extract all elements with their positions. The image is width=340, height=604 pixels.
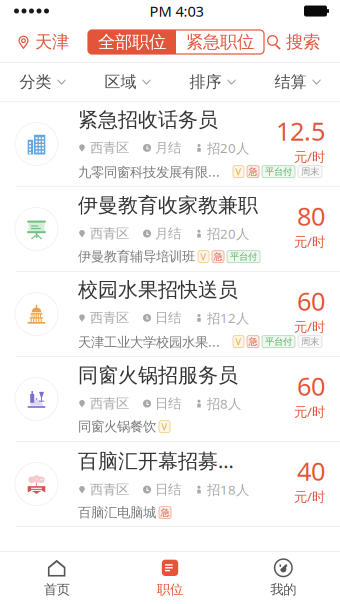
button[interactable]: 结算 [255,63,340,101]
staticText: 校园水果招快送员 [78,277,238,302]
button[interactable]: 排序 [170,63,255,101]
staticText: V [235,165,241,178]
staticText: 急 [248,166,257,177]
button[interactable]: 搜索 [267,22,340,62]
button[interactable]: 60 [0,357,340,442]
staticText: PM 4:03 [149,1,203,21]
button[interactable]: 全部职位 [88,30,176,54]
button[interactable]: 40 [0,442,340,527]
staticText: 元/时 [294,488,325,505]
staticText: 40 [297,454,325,488]
button[interactable]: 80 [0,187,340,272]
staticText: V [235,335,241,348]
staticText: 西青区 [86,395,129,412]
staticText: 周末 [301,336,319,347]
staticText: 招12人 [203,309,249,327]
staticText: 同窗火锅餐饮 [78,418,156,435]
staticText: 日结 [151,395,181,412]
button[interactable]: 区域 [85,63,170,101]
button[interactable]: 12.5 [0,102,340,187]
staticText: 招18人 [203,481,249,498]
button[interactable]: 首页 [0,552,113,604]
button[interactable]: 我的 [227,552,340,604]
button[interactable]: 紧急职位 [176,30,264,54]
staticText: 百脑汇开幕招募… [78,447,234,474]
staticText: 月结 [151,140,181,156]
staticText: 元/时 [294,148,325,165]
button[interactable]: 职位 [113,552,227,604]
staticText: 九零同窗科技发展有限公司 [78,163,230,180]
staticText: 首页 [44,581,70,598]
staticText: 招8人 [203,395,241,412]
staticText: 天津 [35,31,69,53]
staticText: 招20人 [203,225,249,242]
staticText: 元/时 [294,403,325,420]
staticText: 搜索 [286,31,320,53]
staticText: 元/时 [294,233,325,250]
staticText: 日结 [151,481,181,498]
button[interactable]: 分类 [0,63,85,101]
staticText: 周末 [301,166,319,177]
staticText: 伊曼教育辅导培训班 [78,248,195,265]
staticText: 急 [248,336,257,347]
staticText: V [200,250,206,263]
staticText: 紧急招收话务员 [78,107,218,132]
staticText: 百脑汇电脑城 [78,504,156,521]
staticText: V [161,420,167,433]
staticText: 60 [297,284,325,318]
staticText: 我的 [270,581,296,598]
staticText: 职位 [157,581,183,598]
staticText: 平台付 [265,336,292,347]
staticText: 平台付 [230,251,257,262]
staticText: 分类 [19,72,51,92]
staticText: 天津工业大学校园水果大超… [78,333,230,350]
staticText: 平台付 [265,166,292,177]
staticText: 全部职位 [98,31,166,53]
staticText: 伊曼教育收家教兼职 [78,193,258,218]
staticText: 紧急职位 [186,31,254,53]
staticText: 12.5 [276,114,325,148]
staticText: 区域 [104,72,136,92]
button[interactable]: 60 [0,272,340,357]
staticText: 西青区 [86,310,129,326]
staticText: 排序 [189,72,221,92]
staticText: 招20人 [203,139,249,157]
staticText: 元/时 [294,318,325,335]
staticText: 西青区 [86,481,129,498]
staticText: 急 [160,507,169,518]
staticText: 月结 [151,225,181,242]
staticText: 西青区 [86,225,129,242]
staticText: 60 [297,369,325,403]
staticText: 结算 [274,72,306,92]
staticText: 急 [213,251,222,262]
button[interactable]: 天津 [0,22,85,62]
staticText: 西青区 [86,140,129,156]
staticText: 同窗火锅招服务员 [78,363,238,388]
staticText: 80 [297,199,325,233]
staticText: 日结 [151,310,181,326]
